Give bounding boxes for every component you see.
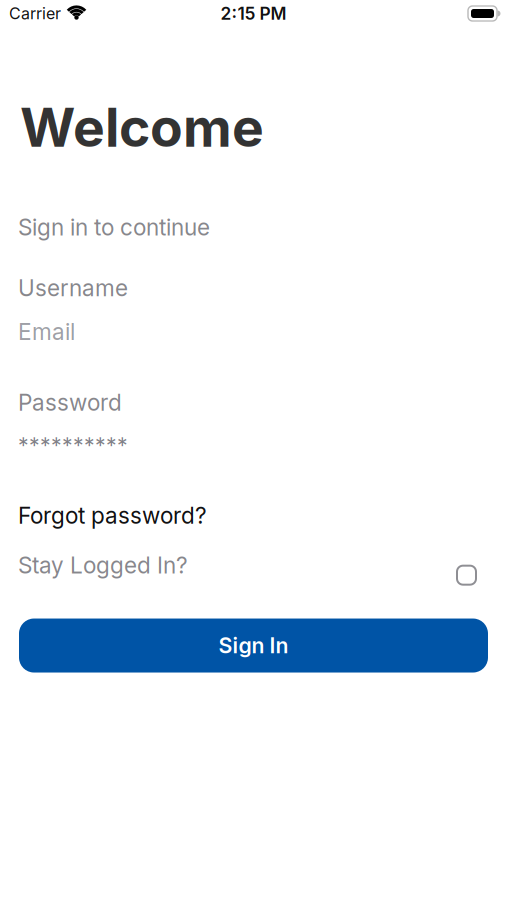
staticText: Sign in to continue — [18, 214, 210, 241]
staticText: Carrier — [9, 4, 61, 23]
staticText: Welcome — [20, 96, 264, 159]
staticText: 2:15 PM — [220, 3, 286, 24]
button[interactable]: Forgot password? — [18, 502, 207, 529]
staticText: Email — [18, 318, 75, 345]
staticText: Sign In — [218, 633, 288, 658]
button[interactable] — [457, 556, 476, 575]
staticText: Forgot password? — [18, 502, 207, 529]
button[interactable]: Sign In — [19, 618, 488, 672]
staticText: ********** — [18, 433, 128, 458]
staticText: Password — [18, 389, 122, 416]
staticText: Username — [18, 275, 128, 301]
staticText: Stay Logged In? — [18, 552, 188, 578]
